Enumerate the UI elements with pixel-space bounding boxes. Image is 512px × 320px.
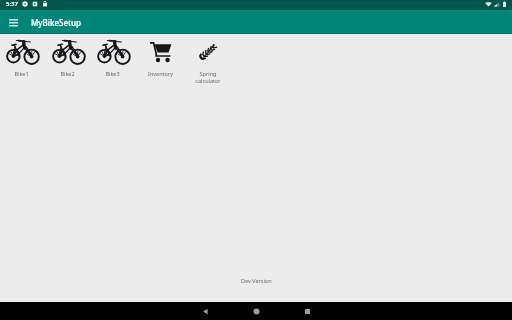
button[interactable]: Inventory [139,38,182,77]
staticText: Dev Version [241,277,272,284]
button[interactable]: Bike2 [46,38,89,77]
staticText: Bike1 [14,70,29,77]
button[interactable]: Open navigation menu [2,10,24,34]
staticText: MyBikeSetup [31,17,82,28]
staticText: Bike3 [105,70,120,77]
staticText: Inventory [148,70,173,77]
button[interactable]: Bike3 [91,38,134,77]
button[interactable]: Back [188,302,222,320]
button[interactable]: Bike1 [0,38,43,77]
staticText: 5:37 [6,0,18,8]
staticText: Spring calculator [195,70,221,84]
button[interactable]: Spring calculator [186,38,229,84]
button[interactable]: Recent apps [290,302,324,320]
staticText: Bike2 [60,70,75,77]
button[interactable]: Home [239,302,273,320]
